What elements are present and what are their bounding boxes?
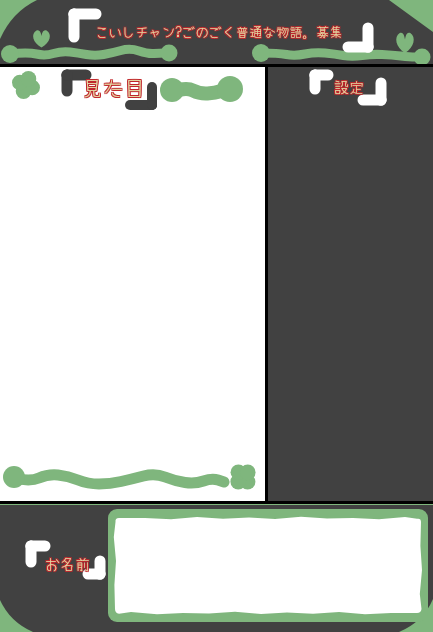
- staticText: 設定: [333, 75, 364, 97]
- staticText: お名前: [46, 552, 92, 574]
- staticText: 見た目: [82, 73, 145, 103]
- staticText: こいしチャン?ごのごく普通な物語。募集: [94, 22, 342, 41]
- staticText: 設定: [333, 76, 364, 98]
- staticText: こいしチャン?ごのごく普通な物語。募集: [95, 20, 343, 39]
- staticText: お名前: [44, 554, 90, 576]
- staticText: こいしチャン?ごのごく普通な物語。募集: [95, 22, 343, 41]
- staticText: 見た目: [83, 73, 146, 103]
- staticText: こいしチャン?ごのごく普通な物語。募集: [94, 20, 342, 39]
- button[interactable]: こいしチャン?ごのごく普通な物語。募集: [95, 21, 343, 40]
- staticText: こいしチャン?ごのごく普通な物語。募集: [96, 21, 344, 40]
- staticText: 見た目: [81, 73, 144, 103]
- staticText: お名前: [44, 552, 90, 574]
- staticText: お名前: [45, 552, 91, 574]
- button[interactable]: 見た目: [82, 72, 145, 102]
- staticText: こいしチャン?ごのごく普通な物語。募集: [94, 21, 342, 40]
- button[interactable]: 設定: [334, 76, 365, 98]
- staticText: 見た目: [83, 72, 146, 102]
- staticText: お名前: [46, 553, 92, 575]
- staticText: 設定: [335, 76, 366, 98]
- staticText: こいしチャン?ごのごく普通な物語。募集: [96, 22, 344, 41]
- staticText: 設定: [334, 75, 365, 97]
- staticText: こいしチャン?ごのごく普通な物語。募集: [96, 20, 344, 39]
- staticText: 見た目: [83, 71, 146, 101]
- staticText: お名前: [45, 553, 91, 575]
- staticText: 設定: [333, 77, 364, 99]
- staticText: 設定: [335, 77, 366, 99]
- staticText: お名前: [46, 554, 92, 576]
- staticText: 見た目: [81, 71, 144, 101]
- staticText: お名前: [45, 554, 91, 576]
- staticText: 見た目: [82, 71, 145, 101]
- button[interactable]: お名前: [45, 553, 91, 575]
- staticText: 見た目: [82, 72, 145, 102]
- staticText: お名前: [44, 553, 90, 575]
- staticText: 見た目: [81, 72, 144, 102]
- staticText: こいしチャン?ごのごく普通な物語。募集: [95, 21, 343, 40]
- staticText: 設定: [335, 75, 366, 97]
- staticText: 設定: [334, 76, 365, 98]
- staticText: 設定: [334, 77, 365, 99]
